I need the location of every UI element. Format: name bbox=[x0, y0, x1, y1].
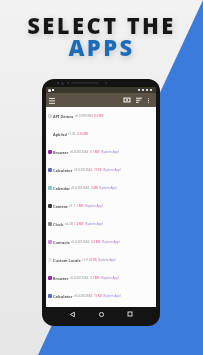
staticText: 1.4 MB bbox=[74, 222, 84, 226]
staticText: (System App) bbox=[101, 150, 119, 154]
staticText: v4.3.8 bbox=[65, 222, 73, 226]
button[interactable]: Calendar bbox=[46, 179, 156, 197]
staticText: 1.1 MB bbox=[74, 204, 84, 208]
staticText: Clock bbox=[53, 222, 64, 227]
staticText: Calculator bbox=[53, 168, 73, 173]
staticText: (System App) bbox=[85, 222, 103, 226]
staticText: (System App) bbox=[101, 276, 119, 280]
staticText: SELECT THE bbox=[27, 10, 176, 40]
staticText: 3.7 MB bbox=[90, 150, 100, 154]
button[interactable]: Home bbox=[96, 309, 106, 319]
staticText: v6.0-2612684 bbox=[70, 150, 89, 154]
staticText: (System App) bbox=[103, 168, 121, 172]
staticText: (System App) bbox=[102, 240, 120, 244]
staticText: v6.0-2612684 bbox=[70, 276, 89, 280]
staticText: v1.20 bbox=[68, 132, 76, 136]
button[interactable]: Clock bbox=[46, 215, 156, 233]
staticText: Calculator bbox=[53, 294, 73, 299]
staticText: 73 KB bbox=[94, 294, 102, 298]
staticText: Camera bbox=[53, 204, 68, 209]
staticText: v6.0-2612684 bbox=[74, 294, 93, 298]
staticText: v6.0 3075583 bbox=[75, 114, 93, 118]
button[interactable]: Select all bbox=[123, 96, 131, 104]
staticText: 3.4 MB bbox=[91, 240, 101, 244]
button[interactable]: Back bbox=[67, 309, 77, 319]
staticText: API Demos bbox=[53, 114, 74, 119]
staticText: 4 MB bbox=[91, 186, 98, 190]
staticText: v6.0-2612684 bbox=[74, 168, 93, 172]
button[interactable]: Camera bbox=[46, 197, 156, 215]
button[interactable]: Contacts bbox=[46, 233, 156, 251]
staticText: Browser bbox=[53, 150, 69, 155]
staticText: v1 bbox=[69, 204, 73, 208]
staticText: 8.6 MB bbox=[94, 114, 104, 118]
staticText: Browser bbox=[53, 276, 69, 281]
staticText: v1.0 bbox=[82, 258, 88, 262]
button[interactable]: Browser bbox=[46, 269, 156, 287]
button[interactable]: Apk3sd bbox=[46, 125, 156, 143]
button[interactable]: Calculator bbox=[46, 161, 156, 179]
button[interactable]: Calculator bbox=[46, 287, 156, 305]
staticText: (System App) bbox=[85, 204, 103, 208]
button[interactable]: Open navigation menu bbox=[47, 96, 56, 105]
staticText: (System App) bbox=[98, 258, 116, 262]
staticText: APPS bbox=[68, 32, 135, 62]
button[interactable]: Sort bbox=[135, 96, 143, 104]
button[interactable]: API Demos bbox=[46, 107, 156, 125]
staticText: 3.7 MB bbox=[90, 276, 100, 280]
staticText: Contacts bbox=[53, 240, 70, 245]
staticText: (System App) bbox=[99, 186, 117, 190]
staticText: v6.0-2612684 bbox=[71, 240, 90, 244]
button[interactable]: Recent apps bbox=[125, 309, 135, 319]
staticText: Apk3sd bbox=[53, 132, 67, 137]
button[interactable]: More options bbox=[145, 97, 151, 103]
button[interactable]: Browser bbox=[46, 143, 156, 161]
staticText: 73 KB bbox=[94, 168, 102, 172]
staticText: v6.0-2612684 bbox=[71, 186, 90, 190]
button[interactable]: Custom Locale bbox=[46, 251, 156, 269]
staticText: Calendar bbox=[53, 186, 70, 191]
staticText: (System App) bbox=[103, 294, 121, 298]
staticText: 4.30 MB bbox=[77, 132, 88, 136]
staticText: 47 KB bbox=[89, 258, 97, 262]
staticText: Custom Locale bbox=[53, 258, 81, 263]
